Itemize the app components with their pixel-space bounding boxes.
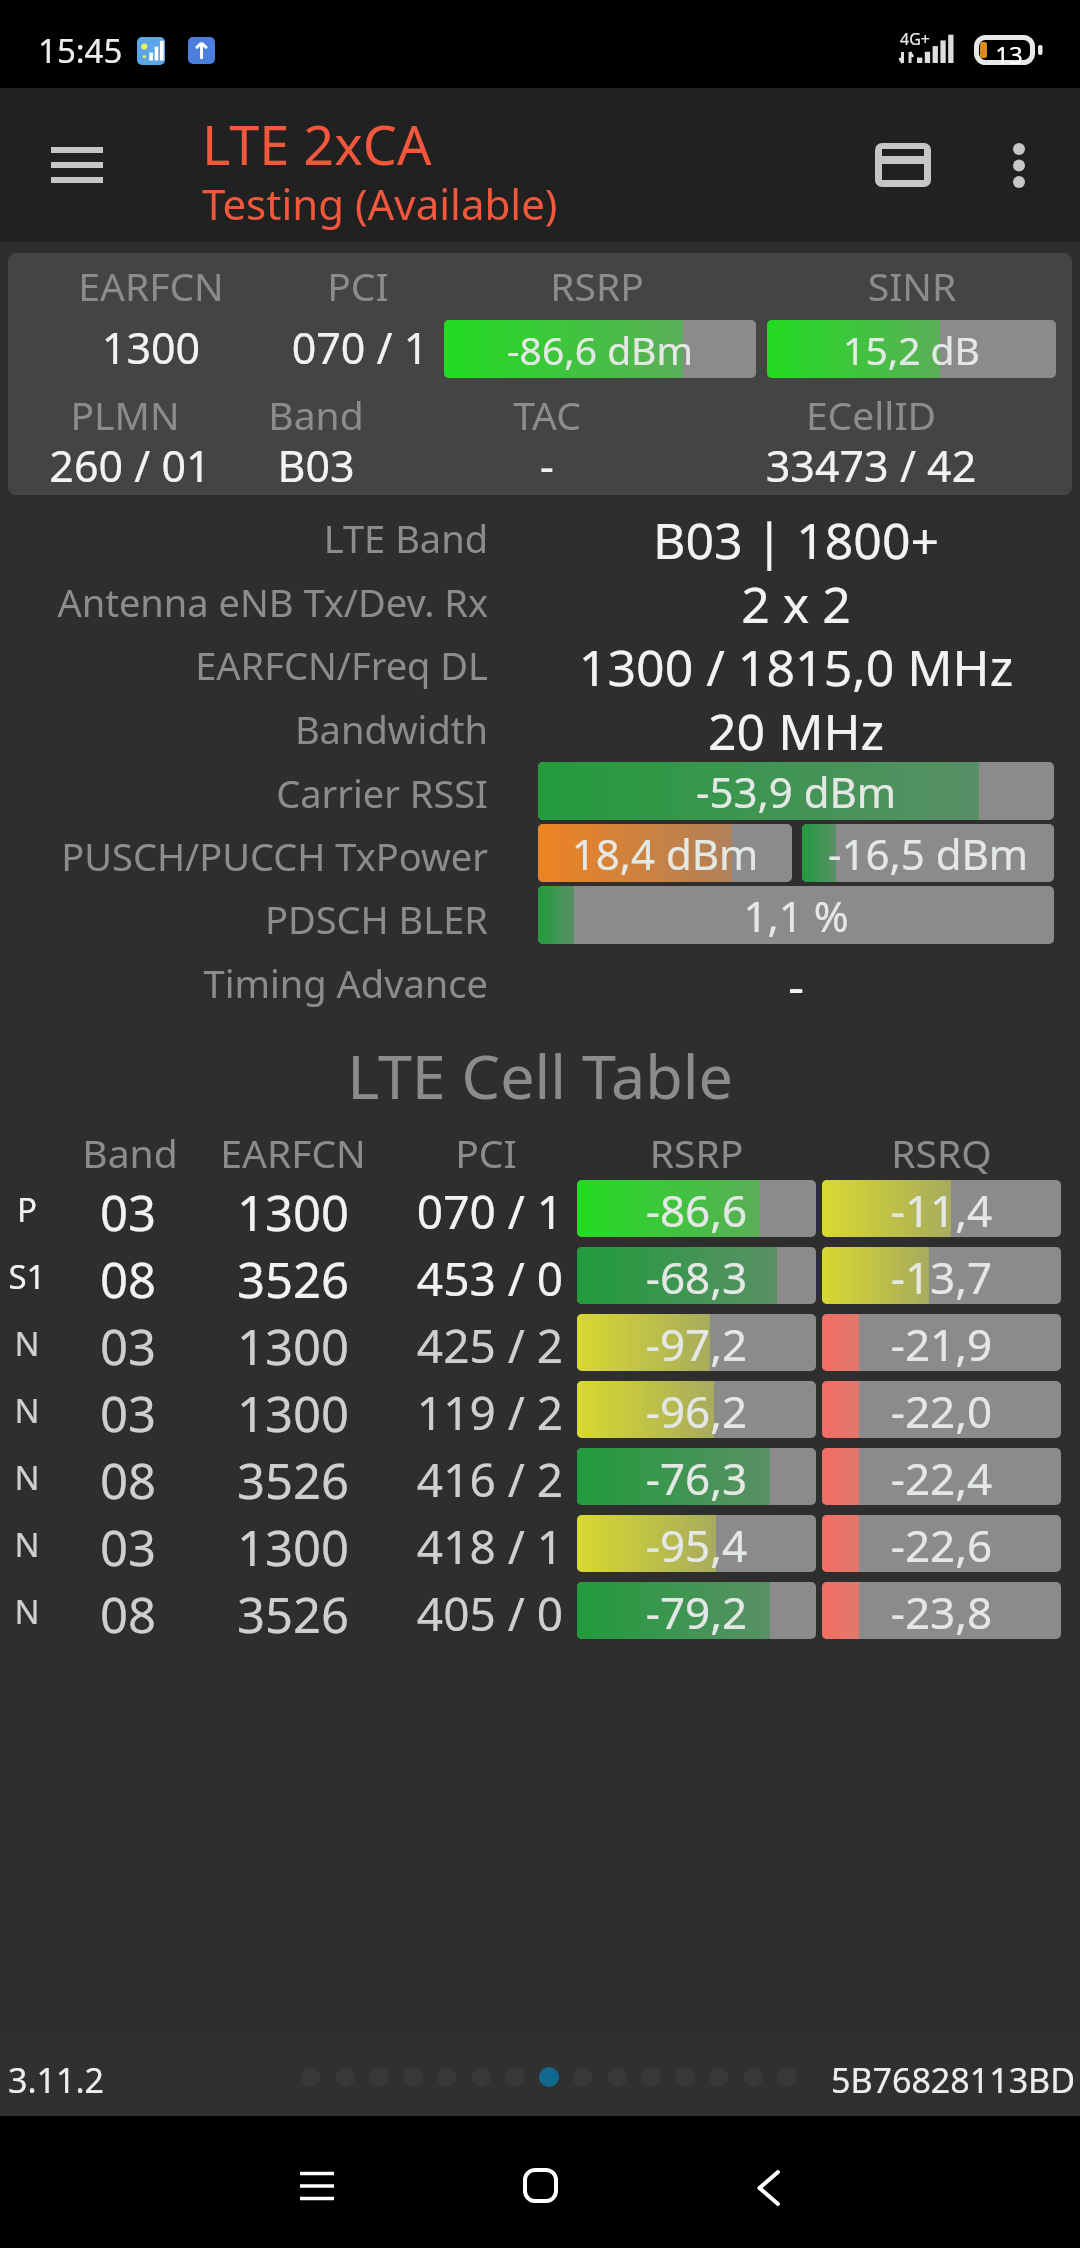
staticText: 03 bbox=[53, 1514, 203, 1581]
button[interactable]: Open navigation drawer bbox=[10, 88, 138, 242]
staticText: Antenna eNB Tx/Dev. Rx bbox=[0, 576, 488, 628]
staticText: 1300 bbox=[183, 1313, 403, 1380]
staticText: 405 / 0 bbox=[400, 1582, 580, 1645]
staticText: LTE 2xCA bbox=[202, 107, 432, 181]
staticText: -79,2 bbox=[577, 1582, 816, 1639]
staticText: -23,8 bbox=[822, 1582, 1061, 1639]
staticText: - bbox=[432, 436, 662, 495]
staticText: -76,3 bbox=[577, 1448, 816, 1505]
staticText: 20 MHz bbox=[538, 697, 1054, 765]
button[interactable]: S1 bbox=[0, 1242, 1080, 1309]
staticText: 070 / 1 bbox=[400, 1180, 580, 1243]
staticText: 3.11.2 bbox=[8, 2057, 105, 2103]
staticText: Band bbox=[236, 388, 396, 441]
staticText: 260 / 01 bbox=[8, 436, 255, 495]
staticText: EARFCN bbox=[8, 259, 296, 312]
staticText: Carrier RSSI bbox=[0, 767, 488, 819]
staticText: S1 bbox=[0, 1254, 54, 1299]
staticText: RSRQ bbox=[822, 1126, 1061, 1179]
staticText: -13,7 bbox=[822, 1247, 1061, 1304]
staticText: 3526 bbox=[183, 1246, 403, 1313]
staticText: 453 / 0 bbox=[400, 1247, 580, 1310]
staticText: -11,4 bbox=[822, 1180, 1061, 1237]
staticText: -95,4 bbox=[577, 1515, 816, 1572]
staticText: -53,9 dBm bbox=[538, 763, 1054, 820]
staticText: N bbox=[0, 1321, 54, 1366]
staticText: 1300 bbox=[183, 1514, 403, 1581]
staticText: 03 bbox=[53, 1313, 203, 1380]
staticText: PUSCH/PUCCH TxPower bbox=[0, 830, 488, 882]
staticText: Timing Advance bbox=[0, 957, 488, 1009]
staticText: 3526 bbox=[183, 1581, 403, 1648]
staticText: 119 / 2 bbox=[400, 1381, 580, 1444]
staticText: N bbox=[0, 1455, 54, 1500]
staticText: 425 / 2 bbox=[400, 1314, 580, 1377]
button[interactable]: Card view bbox=[843, 88, 963, 242]
staticText: PDSCH BLER bbox=[0, 893, 488, 945]
staticText: 070 / 1 bbox=[285, 318, 435, 377]
staticText: ECellID bbox=[706, 388, 1036, 441]
button[interactable]: Home bbox=[466, 2116, 614, 2248]
staticText: PCI bbox=[283, 259, 433, 312]
staticText: 1300 bbox=[183, 1179, 403, 1246]
staticText: 1300 bbox=[8, 318, 296, 377]
staticText: Testing (Available) bbox=[202, 175, 558, 232]
button[interactable]: N bbox=[0, 1376, 1080, 1443]
staticText: 2 x 2 bbox=[538, 570, 1054, 638]
staticText: 08 bbox=[53, 1246, 203, 1313]
button[interactable]: Back bbox=[694, 2116, 842, 2248]
staticText: Bandwidth bbox=[0, 703, 488, 755]
staticText: PLMN bbox=[8, 388, 250, 441]
staticText: TAC bbox=[432, 388, 662, 441]
staticText: 4G+ bbox=[900, 28, 934, 50]
staticText: 418 / 1 bbox=[400, 1515, 580, 1578]
staticText: 1300 bbox=[183, 1380, 403, 1447]
button[interactable]: More options bbox=[963, 88, 1080, 242]
staticText: -97,2 bbox=[577, 1314, 816, 1371]
staticText: 416 / 2 bbox=[400, 1448, 580, 1511]
staticText: -22,6 bbox=[822, 1515, 1061, 1572]
staticText: 3526 bbox=[183, 1447, 403, 1514]
staticText: 08 bbox=[53, 1447, 203, 1514]
staticText: EARFCN/Freq DL bbox=[0, 639, 488, 691]
staticText: B03 bbox=[236, 436, 396, 495]
staticText: N bbox=[0, 1522, 54, 1567]
staticText: 1300 / 1815,0 MHz bbox=[538, 633, 1054, 701]
button[interactable]: P bbox=[0, 1175, 1080, 1242]
staticText: 5B76828113BD bbox=[830, 2057, 1075, 2103]
staticText: EARFCN bbox=[183, 1126, 403, 1179]
staticText: N bbox=[0, 1589, 54, 1634]
staticText: -68,3 bbox=[577, 1247, 816, 1304]
button[interactable]: N bbox=[0, 1510, 1080, 1577]
staticText: -96,2 bbox=[577, 1381, 816, 1438]
staticText: 03 bbox=[53, 1380, 203, 1447]
staticText: 33473 / 42 bbox=[706, 436, 1036, 495]
staticText: 18,4 dBm bbox=[538, 825, 792, 882]
staticText: -22,4 bbox=[822, 1448, 1061, 1505]
staticText: 03 bbox=[53, 1179, 203, 1246]
button[interactable]: N bbox=[0, 1577, 1080, 1644]
button[interactable]: N bbox=[0, 1443, 1080, 1510]
staticText: P bbox=[0, 1187, 54, 1232]
staticText: RSRP bbox=[444, 259, 750, 312]
staticText: 1,1 % bbox=[538, 887, 1054, 944]
staticText: 13 bbox=[991, 38, 1027, 68]
staticText: -86,6 dBm bbox=[444, 323, 756, 376]
staticText: N bbox=[0, 1388, 54, 1433]
staticText: -22,0 bbox=[822, 1381, 1061, 1438]
staticText: 15:45 bbox=[38, 28, 128, 73]
staticText: 15,2 dB bbox=[767, 323, 1056, 376]
staticText: -16,5 dBm bbox=[802, 825, 1054, 882]
staticText: SINR bbox=[767, 259, 1057, 312]
staticText: RSRP bbox=[577, 1126, 816, 1179]
button[interactable]: N bbox=[0, 1309, 1080, 1376]
staticText: - bbox=[538, 951, 1054, 1019]
staticText: -86,6 bbox=[577, 1180, 816, 1237]
staticText: Band bbox=[55, 1126, 205, 1179]
staticText: PCI bbox=[396, 1126, 576, 1179]
staticText: 08 bbox=[53, 1581, 203, 1648]
staticText: LTE Band bbox=[0, 512, 488, 564]
staticText: LTE Cell Table bbox=[0, 1034, 1080, 1117]
staticText: -21,9 bbox=[822, 1314, 1061, 1371]
button[interactable]: Recents bbox=[243, 2116, 391, 2248]
